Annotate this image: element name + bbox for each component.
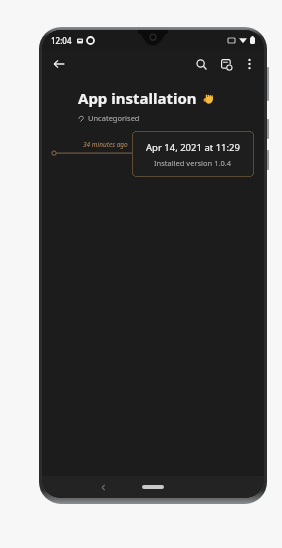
button[interactable]: Back <box>47 52 71 76</box>
button[interactable]: More options <box>238 53 260 75</box>
button[interactable]: Back <box>93 477 113 497</box>
button[interactable]: History <box>215 53 237 75</box>
staticText: Apr 14, 2021 at 11:29 <box>146 141 240 154</box>
staticText: Uncategorised <box>88 113 140 123</box>
staticText: 34 minutes ago <box>83 140 128 149</box>
button[interactable]: Home <box>133 477 173 497</box>
button[interactable]: Apr 14, 2021 at 11:29 <box>132 131 254 177</box>
staticText: Installed version 1.0.4 <box>154 158 232 168</box>
staticText: 12:04 <box>51 35 72 46</box>
staticText: App installation <box>78 88 197 108</box>
button[interactable]: Search <box>190 53 212 75</box>
